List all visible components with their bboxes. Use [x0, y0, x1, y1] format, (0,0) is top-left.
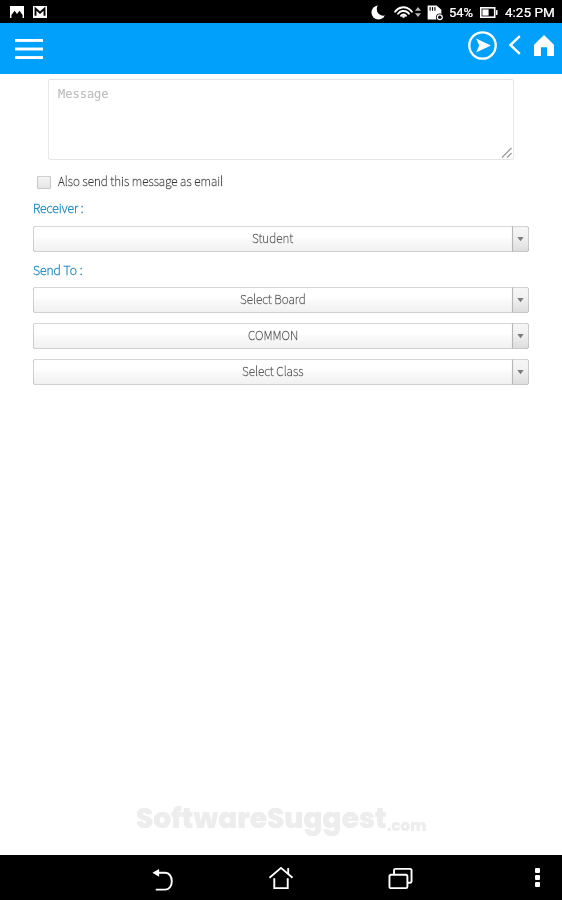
staticText: Send To :: [33, 261, 83, 280]
button[interactable]: Select Class: [33, 359, 529, 385]
button[interactable]: Recent apps: [378, 856, 422, 900]
staticText: Select Board: [240, 291, 306, 310]
button[interactable]: Message: [48, 79, 514, 160]
button[interactable]: Back: [498, 28, 531, 61]
button[interactable]: Back: [140, 857, 184, 900]
button[interactable]: More options: [517, 857, 557, 897]
staticText: SoftwareSuggest: [136, 799, 387, 838]
staticText: Student: [252, 230, 294, 249]
button[interactable]: Home: [527, 28, 561, 62]
button[interactable]: Select Board: [33, 287, 529, 313]
button[interactable]: Send message: [462, 25, 502, 65]
button[interactable]: Open navigation menu: [15, 34, 60, 64]
staticText: COMMON: [248, 327, 299, 346]
button[interactable]: COMMON: [33, 323, 529, 349]
staticText: Also send this message as email: [58, 173, 224, 192]
staticText: Receiver :: [33, 199, 84, 218]
staticText: 54%: [449, 5, 474, 20]
button[interactable]: Student: [33, 226, 529, 252]
staticText: Message: [58, 87, 109, 101]
button[interactable]: Also send this message as email: [37, 173, 224, 192]
staticText: Select Class: [242, 363, 304, 382]
staticText: 4:25 PM: [505, 4, 555, 20]
button[interactable]: Home: [259, 856, 303, 900]
staticText: .com: [387, 815, 427, 836]
